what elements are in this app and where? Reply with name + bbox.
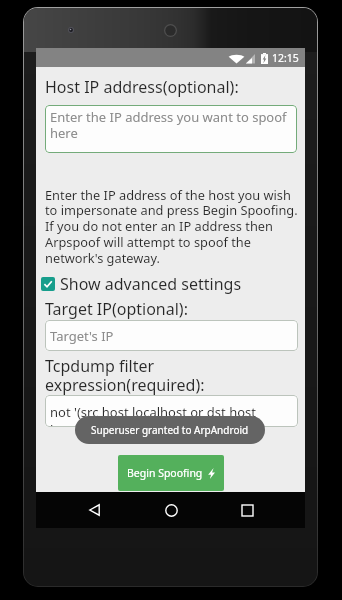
button[interactable]: Begin Spoofing (118, 455, 224, 491)
staticText: Enter the IP address of the host you wis… (45, 186, 301, 267)
button[interactable]: Enter the IP address you want to spoof h… (45, 105, 297, 153)
staticText: Target's IP (50, 327, 114, 345)
staticText: Superuser granted to ArpAndroid (91, 423, 249, 437)
button[interactable]: Home (153, 492, 189, 528)
staticText: 12:15 (272, 51, 299, 65)
button[interactable]: not '(src host localhost or dst host loc… (45, 395, 298, 427)
button[interactable]: Back (76, 492, 112, 528)
staticText: Show advanced settings (60, 273, 242, 295)
staticText: Begin Spoofing (127, 466, 203, 480)
staticText: not '(src host localhost or dst host loc… (50, 403, 294, 427)
staticText: Host IP address(optional): (45, 76, 239, 98)
staticText: Tcpdump filter expression(required): (45, 355, 205, 395)
button[interactable]: Target's IP (45, 320, 298, 351)
staticText: Enter the IP address you want to spoof h… (50, 108, 293, 141)
button[interactable]: Show advanced settings (39, 271, 244, 297)
staticText: Target IP(optional): (45, 298, 188, 320)
button[interactable]: Recent apps (229, 492, 265, 528)
